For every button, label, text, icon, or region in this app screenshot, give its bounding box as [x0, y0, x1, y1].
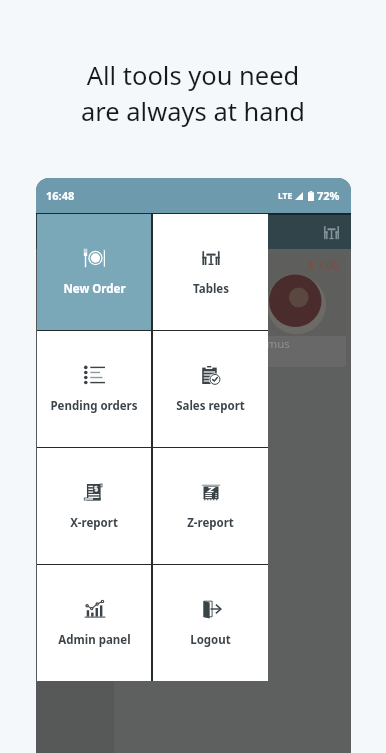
staticText: All tools you need are always at hand	[0, 58, 386, 129]
staticText: 72%	[317, 188, 340, 203]
staticText: Z-report	[187, 515, 234, 531]
button[interactable]: Tables	[153, 214, 268, 330]
button[interactable]: Logout	[153, 565, 268, 681]
button[interactable]: Pending orders	[37, 331, 151, 447]
staticText: Logout	[190, 632, 231, 648]
staticText: New Order	[63, 281, 126, 297]
staticText: Sales report	[176, 398, 245, 414]
staticText: Pending orders	[50, 398, 138, 414]
staticText: Tables	[193, 281, 229, 297]
button[interactable]: Admin panel	[37, 565, 151, 681]
other: Tables	[322, 223, 341, 242]
button[interactable]: X-report	[37, 448, 151, 564]
staticText: LTE	[278, 190, 293, 202]
staticText: Admin panel	[58, 632, 131, 648]
staticText: X-report	[70, 515, 118, 531]
button[interactable]: New Order	[37, 214, 151, 330]
staticText: $ 7.00	[308, 257, 339, 272]
staticText: n Hummus	[230, 336, 290, 352]
button[interactable]: Sales report	[153, 331, 268, 447]
button[interactable]: Z-report	[153, 448, 268, 564]
staticText: 16:48	[46, 188, 75, 203]
